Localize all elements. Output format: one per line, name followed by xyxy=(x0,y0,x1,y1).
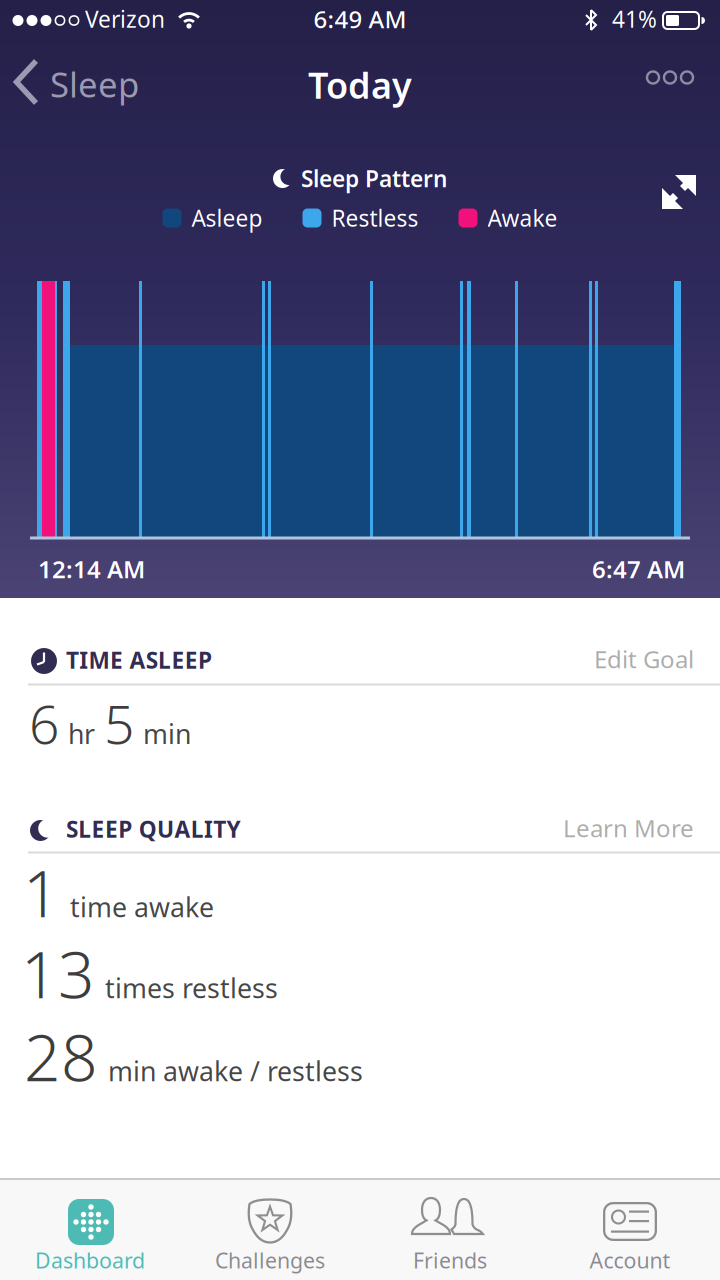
staticText: Sleep xyxy=(50,61,139,107)
staticText: Dashboard xyxy=(35,1246,145,1274)
staticText: Learn More xyxy=(563,812,694,844)
staticText: 6:49 AM xyxy=(313,3,406,35)
staticText: times restless xyxy=(105,970,278,1006)
staticText: 6 xyxy=(29,688,59,759)
staticText: Friends xyxy=(413,1246,487,1274)
button[interactable]: Friends xyxy=(360,1178,540,1280)
button[interactable]: Dashboard xyxy=(0,1178,180,1280)
staticText: min awake / restless xyxy=(108,1053,363,1089)
button[interactable] xyxy=(0,0,720,110)
staticText: TIME ASLEEP xyxy=(66,645,212,675)
staticText: Edit Goal xyxy=(594,643,694,675)
staticText: hr xyxy=(68,716,95,751)
staticText: 13 xyxy=(21,931,95,1016)
staticText: 28 xyxy=(24,1014,98,1099)
staticText: 1 xyxy=(23,850,60,935)
button[interactable]: SLEEP QUALITY xyxy=(0,0,720,46)
staticText: Account xyxy=(589,1246,670,1274)
staticText: Today xyxy=(308,61,412,109)
button[interactable] xyxy=(657,170,701,214)
button[interactable]: Account xyxy=(540,1178,720,1280)
staticText: Awake xyxy=(487,203,557,233)
staticText: 12:14 AM xyxy=(38,553,145,585)
staticText: Asleep xyxy=(191,203,262,233)
staticText: Restless xyxy=(331,203,418,233)
staticText: min xyxy=(143,716,191,751)
staticText: 41% xyxy=(612,4,657,34)
staticText: Challenges xyxy=(215,1246,325,1274)
staticText: 5 xyxy=(104,688,134,759)
button[interactable]: Sleep xyxy=(0,0,160,110)
button[interactable]: Challenges xyxy=(180,1178,360,1280)
button[interactable]: TIME ASLEEP xyxy=(0,0,720,46)
staticText: SLEEP QUALITY xyxy=(66,814,241,844)
staticText: 6:47 AM xyxy=(592,553,685,585)
staticText: Verizon xyxy=(85,4,165,34)
staticText: time awake xyxy=(70,889,214,925)
staticText: Sleep Pattern xyxy=(301,163,447,194)
